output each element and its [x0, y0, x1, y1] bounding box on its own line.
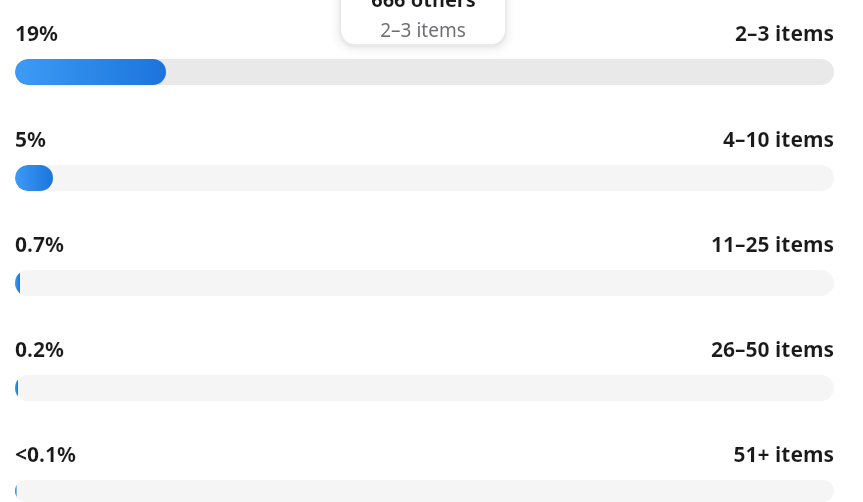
staticText: 2–3 items — [380, 17, 466, 43]
button[interactable]: 5% — [0, 105, 863, 210]
button[interactable]: 0.2% — [0, 315, 863, 420]
button[interactable]: Chart tooltip — [341, 0, 505, 44]
button[interactable] — [15, 59, 834, 85]
staticText: 0.7% — [15, 230, 64, 259]
staticText: 26–50 items — [711, 335, 834, 364]
staticText: 51+ items — [733, 440, 834, 469]
staticText: 666 others — [371, 0, 476, 13]
staticText: <0.1% — [15, 440, 76, 469]
button[interactable] — [15, 270, 834, 296]
button[interactable]: 19% — [0, 0, 863, 105]
button[interactable] — [15, 375, 834, 401]
staticText: 2–3 items — [735, 19, 834, 48]
staticText: 5% — [15, 125, 46, 154]
button[interactable]: 0.7% — [0, 210, 863, 315]
staticText: 19% — [15, 19, 58, 48]
staticText: 4–10 items — [723, 125, 834, 154]
staticText: 11–25 items — [711, 230, 834, 259]
button[interactable] — [15, 480, 834, 502]
button[interactable] — [15, 165, 834, 191]
staticText: 0.2% — [15, 335, 64, 364]
button[interactable]: <0.1% — [0, 420, 863, 502]
